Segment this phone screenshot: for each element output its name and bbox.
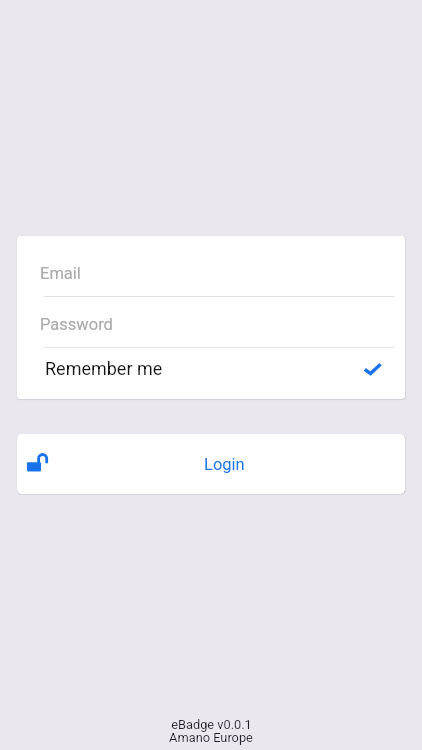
- staticText: Login: [204, 455, 245, 474]
- button[interactable]: Password: [17, 297, 405, 348]
- button[interactable]: Remember me: [17, 348, 405, 399]
- staticText: eBadge v0.0.1: [171, 717, 252, 732]
- staticText: Email: [40, 264, 81, 283]
- other: Login: [21, 450, 53, 482]
- other: Remember me, checked: [362, 359, 386, 383]
- staticText: Remember me: [45, 358, 163, 379]
- button[interactable]: Email: [17, 236, 405, 297]
- button[interactable]: Login: [17, 434, 405, 494]
- staticText: Amano Europe: [169, 730, 253, 745]
- staticText: Password: [40, 315, 113, 334]
